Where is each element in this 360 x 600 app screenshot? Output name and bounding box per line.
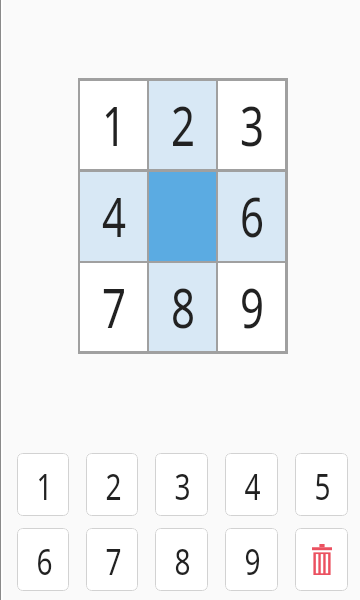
staticText: 4 xyxy=(244,461,261,511)
staticText: 8 xyxy=(174,536,191,586)
button[interactable]: 7 xyxy=(80,263,147,351)
button[interactable]: 1 xyxy=(17,453,69,516)
staticText: 3 xyxy=(174,461,191,511)
staticText: 5 xyxy=(314,461,331,511)
staticText: 6 xyxy=(240,178,265,253)
button[interactable]: 8 xyxy=(149,263,216,351)
button[interactable]: 4 xyxy=(80,172,147,261)
staticText: 9 xyxy=(240,269,265,344)
button[interactable]: 9 xyxy=(218,263,285,351)
button[interactable]: 8 xyxy=(155,528,208,591)
button[interactable]: 6 xyxy=(17,528,69,591)
staticText: 7 xyxy=(102,269,127,344)
staticText: 3 xyxy=(240,87,265,162)
staticText: 7 xyxy=(105,536,122,586)
button[interactable]: 2 xyxy=(86,453,138,516)
button[interactable]: 6 xyxy=(218,172,285,261)
staticText: 6 xyxy=(36,536,53,586)
button[interactable]: Delete xyxy=(295,528,348,591)
staticText: 4 xyxy=(102,178,127,253)
staticText: 9 xyxy=(244,536,261,586)
button[interactable]: 5 xyxy=(295,453,348,516)
button[interactable]: 3 xyxy=(218,81,285,169)
button[interactable]: 2 xyxy=(149,81,216,169)
staticText: 2 xyxy=(105,461,122,511)
staticText: 2 xyxy=(171,87,196,162)
button[interactable]: 9 xyxy=(225,528,278,591)
staticText: 1 xyxy=(102,87,127,162)
staticText: 1 xyxy=(36,461,53,511)
staticText: 8 xyxy=(171,269,196,344)
button[interactable]: 7 xyxy=(86,528,138,591)
button[interactable]: 1 xyxy=(80,81,147,169)
button[interactable]: 4 xyxy=(225,453,278,516)
button[interactable]: 3 xyxy=(155,453,208,516)
